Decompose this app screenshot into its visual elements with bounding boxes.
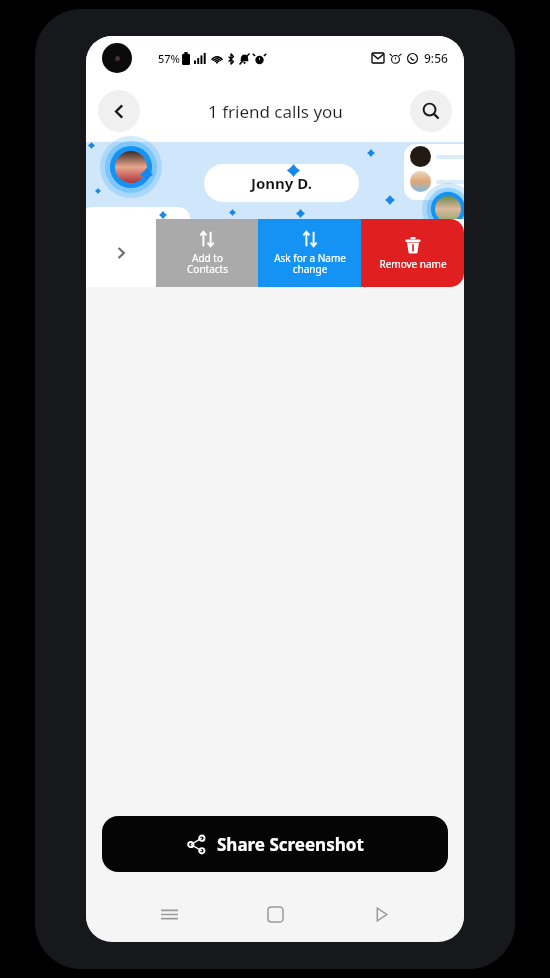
button[interactable]: Recents xyxy=(146,894,192,934)
staticText: Ask for a Name change xyxy=(274,251,346,276)
button[interactable]: Share Screenshot xyxy=(102,816,448,872)
button[interactable]: Back xyxy=(358,894,404,934)
button[interactable]: Add to Contacts xyxy=(156,219,258,287)
staticText: Share Screenshot xyxy=(217,833,364,856)
staticText: 9:56 xyxy=(424,50,448,66)
staticText: 57% xyxy=(158,51,180,66)
staticText: 1 friend calls you xyxy=(208,100,343,123)
staticText: Add to Contacts xyxy=(187,251,228,276)
button[interactable]: Home xyxy=(252,894,298,934)
staticText: Remove name xyxy=(379,257,447,271)
button[interactable]: Search xyxy=(410,90,452,132)
button[interactable]: Remove name xyxy=(361,219,464,287)
staticText: Jonny D. xyxy=(251,173,312,193)
button[interactable]: Jonny D. xyxy=(204,164,359,202)
button[interactable]: Ask for a Name change xyxy=(258,219,361,287)
button[interactable]: Back xyxy=(98,90,140,132)
button[interactable]: Expand xyxy=(86,219,156,287)
